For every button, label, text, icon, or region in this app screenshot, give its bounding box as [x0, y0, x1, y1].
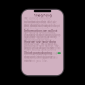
staticText: the details of what is kept and for how … [24, 24, 60, 31]
staticText: from fraud and abuse. We never build adv… [24, 44, 59, 52]
staticText: without your explicit consent, and you c… [24, 52, 53, 62]
staticText: We collect only the information that is … [24, 17, 51, 27]
staticText: profiles and we never track you across t… [24, 46, 60, 53]
staticText: Third party sharing [24, 51, 52, 55]
staticText: run the service, and we will never sell … [24, 20, 60, 27]
staticText: encrypted in transit using modern, indus… [24, 33, 60, 40]
staticText: that consent again at any moment you lik… [24, 56, 57, 63]
staticText: To personalise your experience, to impro… [24, 39, 56, 49]
staticText: How we use your data [24, 40, 56, 44]
staticText: are stored securely on our own servers a… [24, 31, 57, 39]
staticText: to anybody else. Read the short summary … [24, 20, 56, 31]
staticText: Privacy Policy [33, 14, 51, 17]
staticText: features we ship and to keep your accoun… [24, 43, 57, 50]
staticText: Information we collect [24, 29, 57, 33]
staticText: We never share personal data with third … [24, 52, 57, 59]
staticText: Account details, usage data and device i… [24, 30, 60, 37]
staticText: standard ciphers at every step of the jo… [24, 35, 56, 42]
